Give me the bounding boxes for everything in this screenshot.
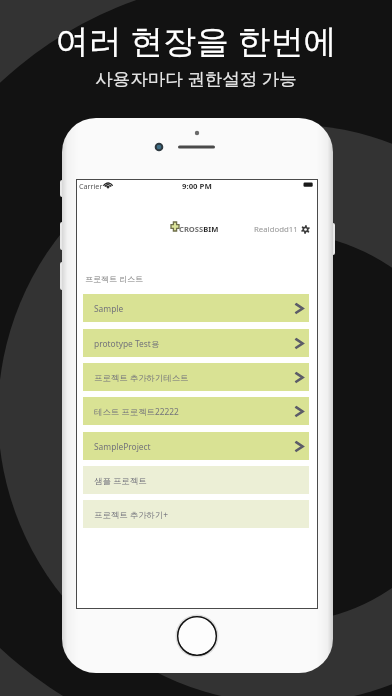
staticText: 샘플 프로젝트 xyxy=(94,475,147,486)
button[interactable]: 테스트 프로젝트22222 xyxy=(83,397,309,425)
staticText: SampleProject xyxy=(94,441,151,452)
staticText: Carrier xyxy=(79,181,103,191)
button[interactable]: 프로젝트 추가하기+ xyxy=(83,500,309,528)
button[interactable]: SampleProject xyxy=(83,432,309,460)
button[interactable]: prototype Test용 xyxy=(83,329,309,357)
button[interactable]: Sample xyxy=(83,294,309,322)
button[interactable]: 프로젝트 추가하기테스트 xyxy=(83,363,309,391)
staticText: 여러 현장을 한번에 xyxy=(55,18,337,63)
staticText: 프로젝트 추가하기테스트 xyxy=(94,372,189,383)
button[interactable]: Settings xyxy=(254,224,310,235)
staticText: 9:00 PM xyxy=(182,181,212,192)
staticText: Realdodd11 xyxy=(254,224,298,235)
button[interactable]: CrossBIM logo xyxy=(171,222,179,233)
staticText: 프로젝트 추가하기+ xyxy=(94,509,169,520)
staticText: Sample xyxy=(94,303,124,314)
staticText: 사용자마다 권한설정 가능 xyxy=(95,66,297,90)
button[interactable]: 샘플 프로젝트 xyxy=(83,466,309,494)
staticText: CROSSBIM xyxy=(179,224,219,234)
staticText: prototype Test용 xyxy=(94,338,160,349)
staticText: 프로젝트 리스트 xyxy=(85,273,144,284)
staticText: 테스트 프로젝트22222 xyxy=(94,406,179,417)
